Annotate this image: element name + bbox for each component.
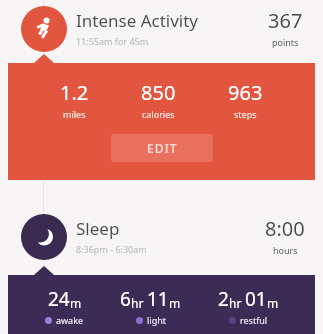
staticText: 850 [141,79,176,106]
staticText: 11:55am for 45m [76,35,149,47]
staticText: Sleep [76,217,120,240]
staticText: points [272,36,299,48]
staticText: 8:00 [265,215,305,242]
staticText: 01 [245,286,267,312]
button[interactable]: Intense Activity [0,0,323,63]
staticText: calories [142,108,175,120]
staticText: 11 [147,286,169,312]
staticText: hours [273,244,298,256]
staticText: miles [63,108,86,120]
staticText: hr [229,295,242,311]
button[interactable]: Sleep [0,208,323,275]
staticText: awake [56,314,84,326]
button[interactable]: EDIT [111,134,213,162]
staticText: m [169,295,181,311]
staticText: hr [131,295,144,311]
staticText: 6 [120,286,131,312]
staticText: EDIT [147,140,178,156]
staticText: 2 [218,286,229,312]
staticText: 8:36pm - 6:30am [76,243,147,255]
button[interactable]: Sleep [21,214,67,260]
button[interactable]: 24 [8,275,315,334]
staticText: light [147,314,166,326]
staticText: restful [240,314,268,326]
staticText: Intense Activity [76,9,199,32]
staticText: 367 [268,7,303,34]
staticText: 963 [228,79,263,106]
button[interactable]: 1.2 [8,63,315,180]
staticText: steps [234,108,257,120]
staticText: 24 [48,286,70,312]
staticText: m [267,295,279,311]
button[interactable]: Intense Activity [21,6,67,52]
staticText: m [70,295,82,311]
staticText: 1.2 [60,79,89,106]
